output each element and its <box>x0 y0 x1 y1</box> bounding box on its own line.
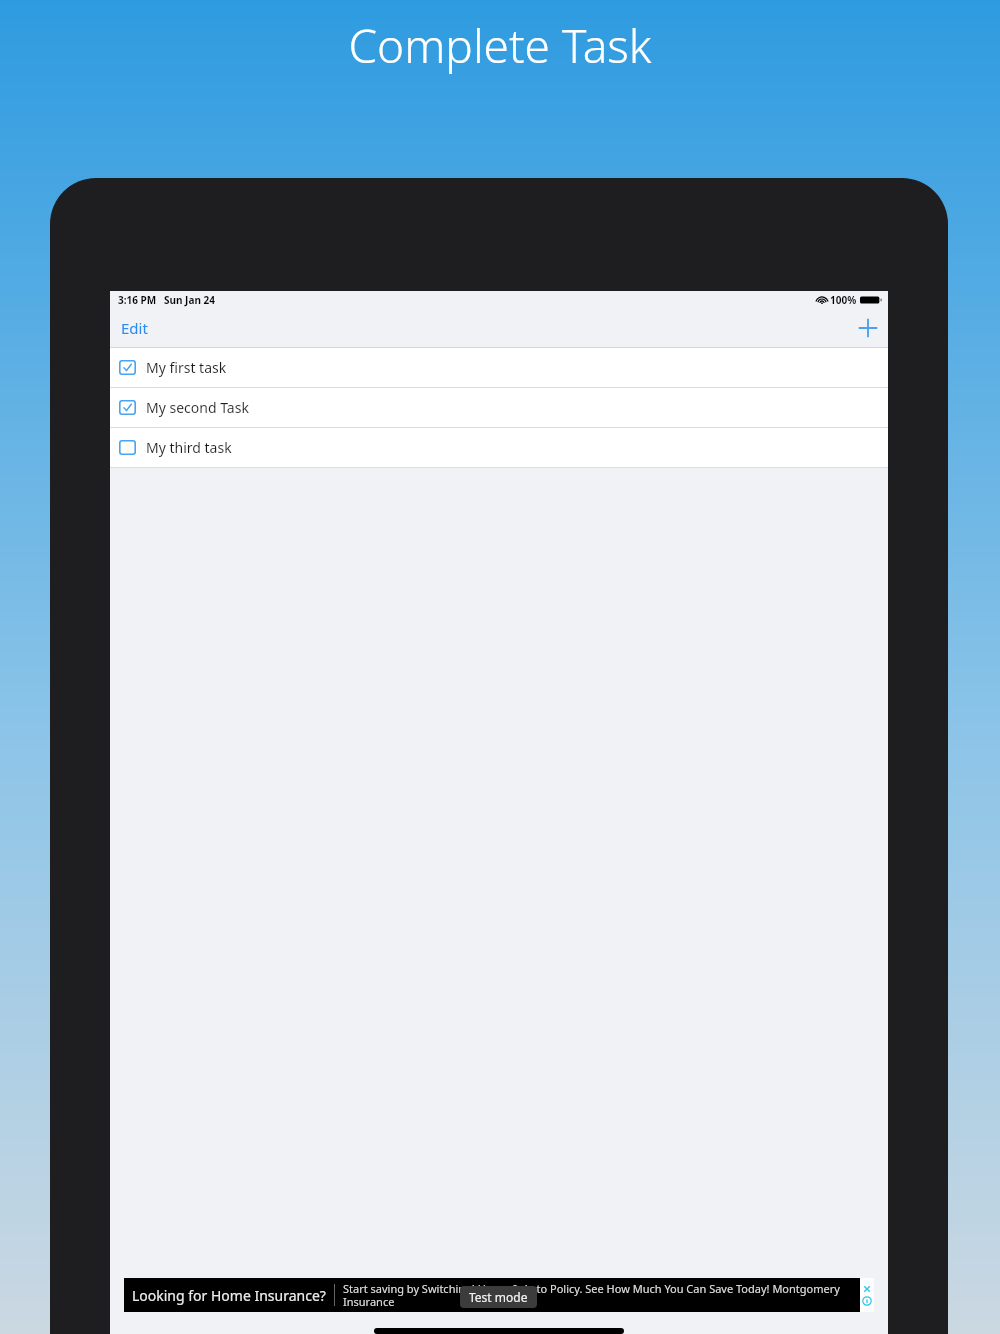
staticText: 100% <box>830 293 857 307</box>
staticText: My third task <box>146 438 232 457</box>
staticText: My first task <box>146 358 227 377</box>
button[interactable]: My second Task <box>110 388 888 427</box>
staticText: Edit <box>121 318 148 338</box>
staticText: Looking for Home Insurance? <box>132 1286 326 1305</box>
staticText: Test mode <box>469 1289 528 1305</box>
staticText: Complete Task <box>348 14 652 77</box>
button[interactable]: My third task <box>110 428 888 467</box>
button[interactable]: Edit <box>110 310 159 346</box>
staticText: 3:16 PM Sun Jan 24 <box>118 293 215 307</box>
staticText: My second Task <box>146 398 249 417</box>
button[interactable]: Looking for Home Insurance? <box>124 1278 874 1312</box>
button[interactable]: Add task <box>848 312 888 344</box>
staticText: Start saving by Switching! Home & Auto P… <box>343 1281 860 1309</box>
button[interactable]: My first task <box>110 348 888 387</box>
